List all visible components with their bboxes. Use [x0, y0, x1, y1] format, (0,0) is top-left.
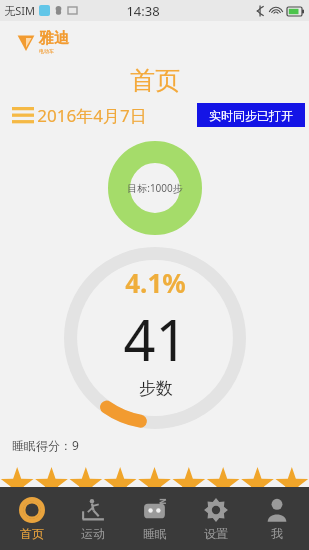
staticText: 首页	[130, 65, 180, 96]
other: Menu	[12, 107, 34, 124]
staticText: 我	[271, 526, 283, 541]
staticText: 实时同步已打开	[209, 108, 293, 123]
staticText: 雅迪	[39, 29, 69, 48]
button[interactable]: Menu	[8, 100, 151, 131]
button[interactable]: 我	[248, 493, 306, 545]
staticText: 无SIM	[4, 3, 35, 18]
button[interactable]: 睡眠	[126, 493, 184, 545]
staticText: 目标:1000步	[127, 181, 183, 195]
staticText: 首页	[20, 526, 44, 541]
staticText: 步数	[139, 378, 173, 399]
button[interactable]: 实时同步已打开	[197, 103, 305, 127]
staticText: 睡眠得分：9	[12, 437, 79, 453]
staticText: 设置	[204, 526, 228, 541]
staticText: 41	[123, 301, 188, 377]
staticText: 14:38	[126, 2, 160, 20]
button[interactable]: 首页	[3, 493, 61, 545]
staticText: 运动	[81, 526, 105, 541]
staticText: 电动车	[39, 48, 54, 54]
staticText: 2016年4月7日	[37, 104, 147, 127]
button[interactable]: 运动	[64, 493, 122, 545]
staticText: 4.1%	[125, 265, 186, 300]
button[interactable]: 设置	[187, 493, 245, 545]
staticText: 睡眠	[143, 526, 167, 541]
